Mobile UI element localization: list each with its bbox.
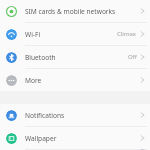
button[interactable]: More [0,69,150,91]
staticText: Off [128,53,137,61]
staticText: Wallpaper [25,134,140,143]
button[interactable]: Bluetooth [0,46,150,68]
button[interactable]: Notifications [0,104,150,126]
staticText: More [25,76,140,85]
button[interactable]: Wallpaper [0,127,150,149]
staticText: Climax [117,30,137,38]
button[interactable]: SIM cards & mobile networks [0,0,150,22]
staticText: Wi-Fi [25,30,117,39]
button[interactable]: Wi-Fi [0,23,150,45]
staticText: Notifications [25,111,140,120]
staticText: Bluetooth [25,53,128,62]
staticText: SIM cards & mobile networks [25,7,140,16]
